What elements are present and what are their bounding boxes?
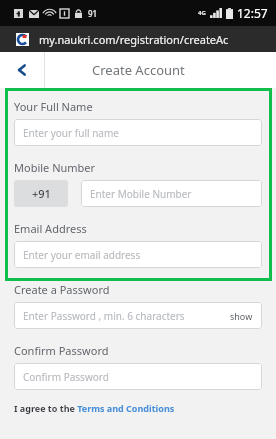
staticText: Create Account <box>92 61 185 79</box>
staticText: +91 <box>32 186 51 201</box>
staticText: Confirm Password <box>23 370 253 384</box>
staticText: Enter your full name <box>23 126 253 140</box>
staticText: Enter Mobile Number <box>90 187 253 201</box>
button[interactable]: Enter your email address <box>14 241 262 268</box>
button[interactable]: Back <box>0 52 44 88</box>
button[interactable]: Enter Mobile Number <box>81 180 262 207</box>
button[interactable]: +91 <box>14 180 68 207</box>
staticText: I agree to the Terms and Conditions <box>14 402 175 414</box>
staticText: Mobile Number <box>14 160 96 175</box>
button[interactable]: I agree to the Terms and Conditions <box>14 402 175 414</box>
staticText: 12:57 <box>237 5 268 21</box>
other: Site icon <box>16 33 29 46</box>
staticText: Enter your email address <box>23 248 253 262</box>
staticText: show <box>230 310 253 322</box>
staticText: Email Address <box>14 221 87 236</box>
staticText: Enter Password , min. 6 characters <box>23 309 230 323</box>
button[interactable]: Site icon <box>0 26 276 52</box>
staticText: my.naukri.com/registration/createAc <box>39 32 229 47</box>
staticText: Confirm Password <box>14 343 109 358</box>
button[interactable]: Confirm Password <box>14 363 262 390</box>
button[interactable]: Enter your full name <box>14 119 262 146</box>
staticText: Create a Password <box>14 282 110 297</box>
staticText: 91 <box>88 8 98 19</box>
button[interactable]: Enter Password , min. 6 characters <box>14 302 262 329</box>
staticText: 4G <box>198 9 206 17</box>
staticText: Your Full Name <box>14 99 93 114</box>
